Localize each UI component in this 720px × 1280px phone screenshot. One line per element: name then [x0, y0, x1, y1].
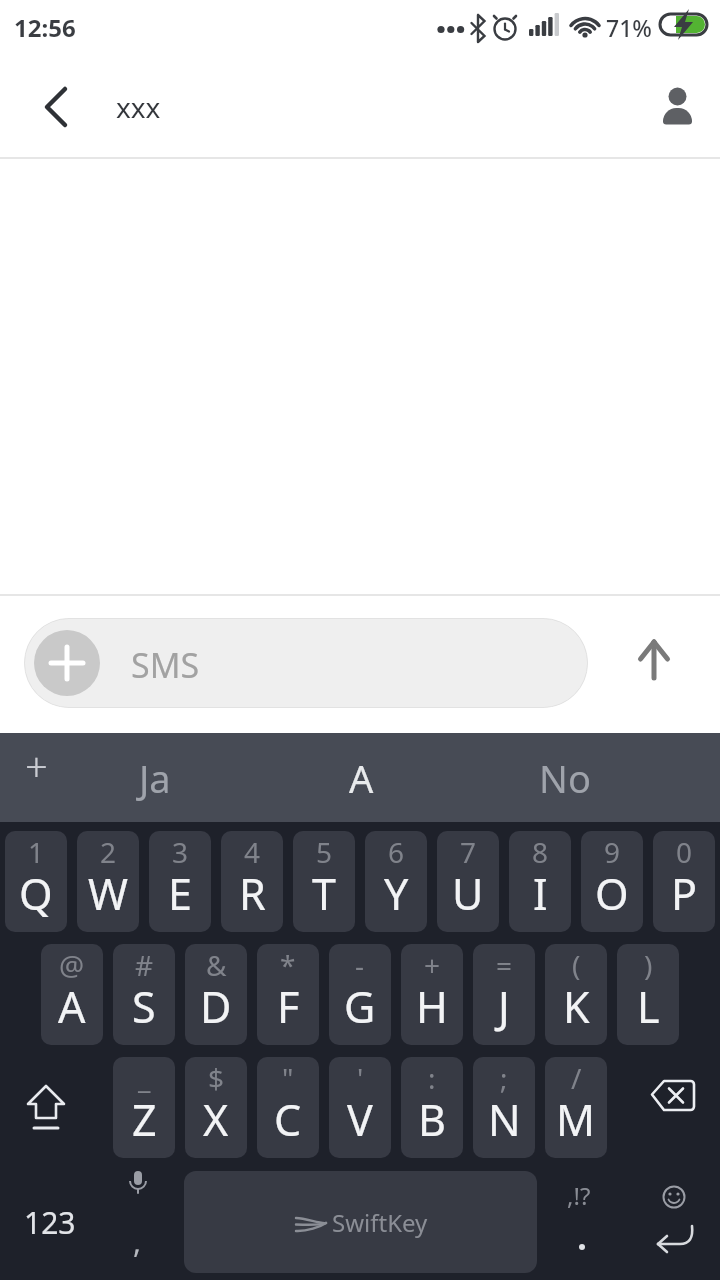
- button[interactable]: =: [473, 944, 535, 1045]
- button[interactable]: #: [113, 944, 175, 1045]
- button[interactable]: &: [185, 944, 247, 1045]
- staticText: ;: [500, 1059, 508, 1097]
- staticText: 7: [460, 833, 477, 871]
- button[interactable]: [28, 79, 84, 135]
- button[interactable]: 123: [10, 1171, 90, 1273]
- staticText: 71%: [606, 12, 652, 43]
- staticText: W: [88, 864, 128, 923]
- staticText: O: [595, 864, 629, 923]
- staticText: ": [282, 1059, 294, 1097]
- staticText: +: [424, 946, 441, 984]
- staticText: G: [344, 977, 376, 1036]
- button[interactable]: /: [545, 1057, 607, 1158]
- button[interactable]: 6: [365, 831, 427, 932]
- staticText: 4: [244, 833, 261, 871]
- staticText: 6: [388, 833, 405, 871]
- staticText: 0: [676, 833, 693, 871]
- button[interactable]: [649, 88, 705, 138]
- staticText: F: [277, 977, 300, 1036]
- staticText: Q: [19, 864, 53, 923]
- button[interactable]: @: [41, 944, 103, 1045]
- staticText: M: [556, 1090, 596, 1149]
- button[interactable]: *: [257, 944, 319, 1045]
- button[interactable]: -: [329, 944, 391, 1045]
- staticText: 5: [316, 833, 333, 871]
- button[interactable]: 7: [437, 831, 499, 932]
- staticText: SMS: [131, 642, 200, 688]
- button[interactable]: :: [401, 1057, 463, 1158]
- staticText: I: [533, 864, 548, 923]
- staticText: *: [280, 946, 296, 984]
- staticText: 12:56: [14, 11, 76, 44]
- staticText: P: [671, 864, 698, 923]
- staticText: K: [563, 977, 590, 1036]
- staticText: /: [571, 1059, 582, 1097]
- staticText: N: [488, 1090, 521, 1149]
- button[interactable]: A: [286, 733, 436, 822]
- staticText: B: [418, 1090, 446, 1149]
- staticText: R: [239, 864, 266, 923]
- staticText: $: [208, 1059, 225, 1097]
- button[interactable]: +: [10, 735, 62, 797]
- staticText: 123: [24, 1202, 76, 1243]
- button[interactable]: ': [329, 1057, 391, 1158]
- button[interactable]: (: [545, 944, 607, 1045]
- staticText: =: [496, 946, 513, 984]
- staticText: +: [25, 739, 48, 793]
- staticText: D: [200, 977, 232, 1036]
- button[interactable]: Ja: [80, 733, 230, 822]
- staticText: ,: [133, 1221, 142, 1262]
- button[interactable]: _: [113, 1057, 175, 1158]
- button[interactable]: ": [257, 1057, 319, 1158]
- staticText: 9: [604, 833, 621, 871]
- button[interactable]: No: [490, 733, 640, 822]
- staticText: Ja: [139, 752, 171, 804]
- button[interactable]: 8: [509, 831, 571, 932]
- button[interactable]: [622, 628, 686, 692]
- staticText: ': [357, 1059, 364, 1097]
- staticText: E: [168, 864, 192, 923]
- button[interactable]: 3: [149, 831, 211, 932]
- staticText: L: [637, 977, 660, 1036]
- button[interactable]: 4: [221, 831, 283, 932]
- staticText: 8: [532, 833, 549, 871]
- staticText: X: [203, 1090, 229, 1149]
- staticText: V: [347, 1090, 373, 1149]
- staticText: 2: [100, 833, 117, 871]
- button[interactable]: ,: [108, 1171, 168, 1273]
- button[interactable]: SwiftKey: [184, 1171, 537, 1273]
- button[interactable]: ): [617, 944, 679, 1045]
- staticText: (: [572, 946, 581, 984]
- staticText: -: [355, 946, 365, 984]
- staticText: 1: [28, 833, 45, 871]
- button[interactable]: 9: [581, 831, 643, 932]
- button[interactable]: [10, 1057, 82, 1157]
- button[interactable]: 5: [293, 831, 355, 932]
- button[interactable]: +: [401, 944, 463, 1045]
- button[interactable]: [630, 1057, 714, 1157]
- button[interactable]: ,!?: [550, 1171, 612, 1273]
- staticText: J: [498, 977, 510, 1036]
- button[interactable]: $: [185, 1057, 247, 1158]
- staticText: Z: [132, 1090, 157, 1149]
- staticText: S: [132, 977, 156, 1036]
- staticText: A: [58, 977, 86, 1036]
- staticText: @: [59, 946, 85, 984]
- staticText: U: [452, 864, 484, 923]
- button[interactable]: ;: [473, 1057, 535, 1158]
- button[interactable]: 1: [5, 831, 67, 932]
- staticText: T: [312, 864, 336, 923]
- button[interactable]: SMS: [24, 618, 588, 708]
- staticText: A: [349, 752, 374, 804]
- staticText: ): [644, 946, 653, 984]
- staticText: No: [539, 752, 591, 804]
- staticText: :: [428, 1059, 436, 1097]
- staticText: H: [416, 977, 448, 1036]
- button[interactable]: 0: [653, 831, 715, 932]
- button[interactable]: [640, 1171, 710, 1273]
- staticText: ,!?: [567, 1179, 591, 1212]
- staticText: C: [274, 1090, 302, 1149]
- staticText: #: [135, 946, 154, 984]
- button[interactable]: 2: [77, 831, 139, 932]
- staticText: 3: [172, 833, 189, 871]
